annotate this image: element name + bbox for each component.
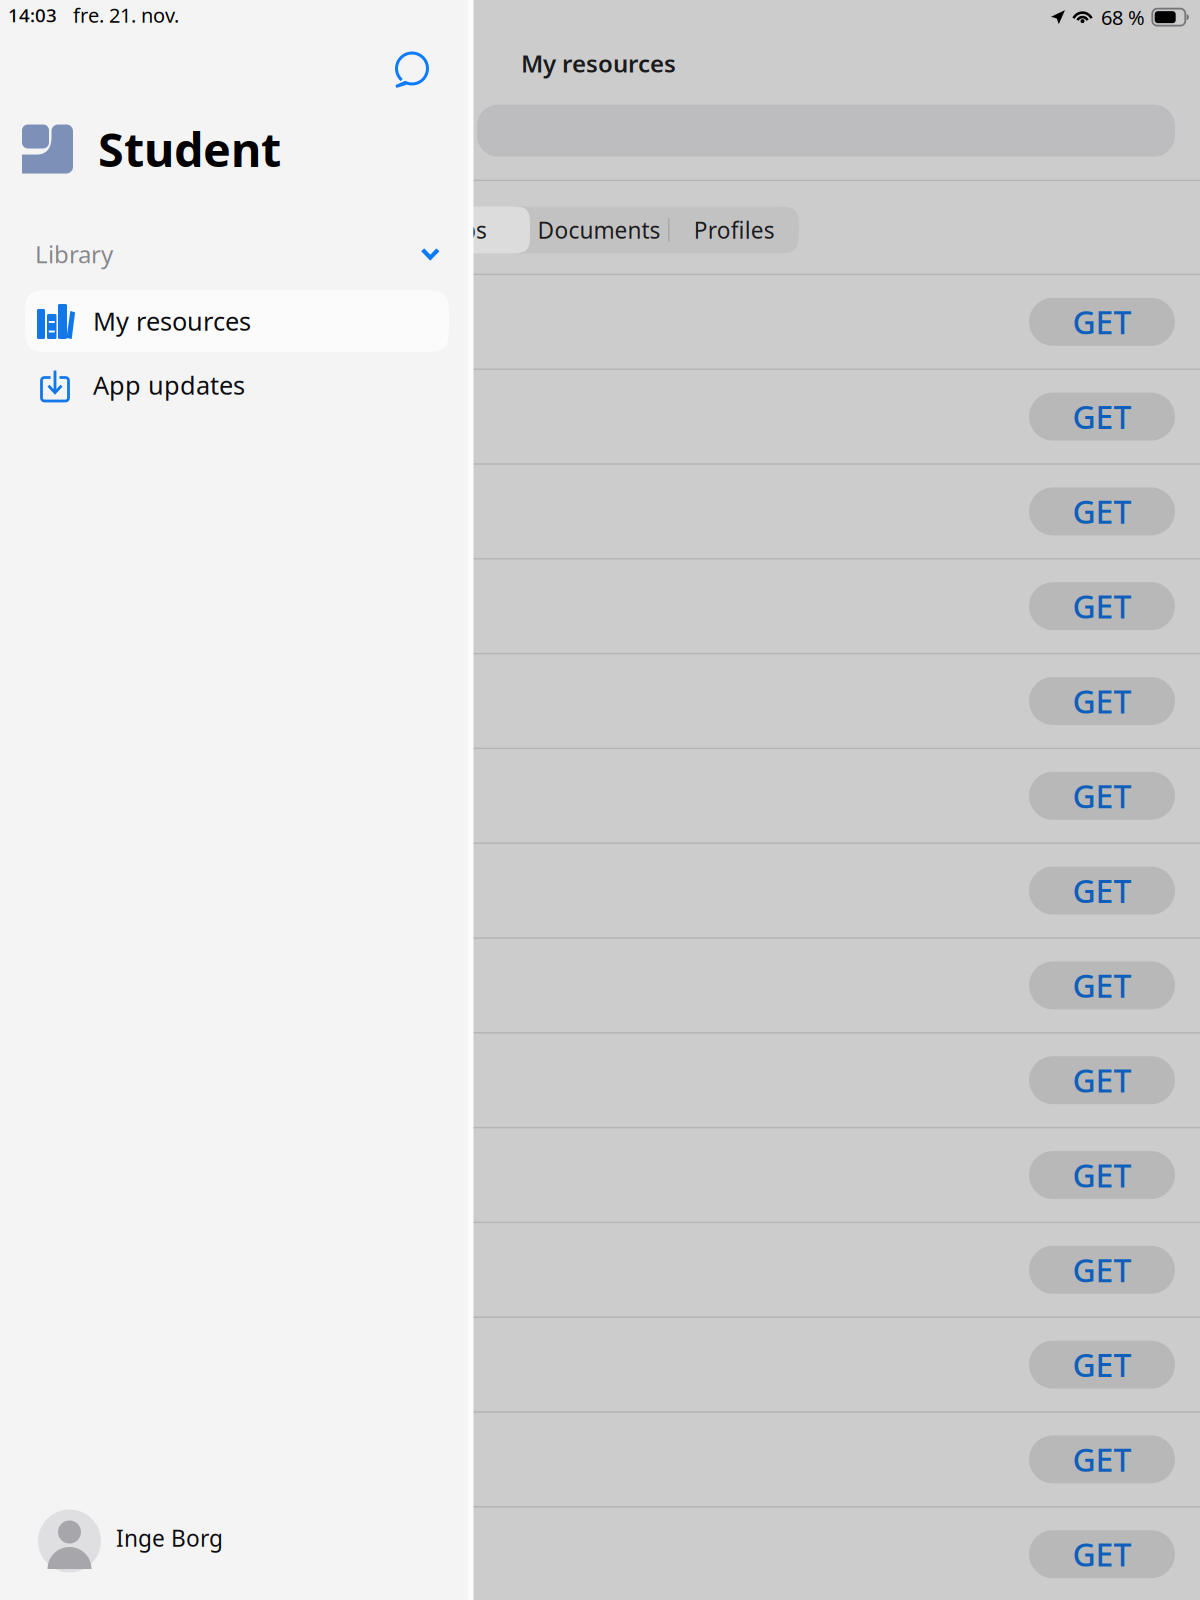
button[interactable]: GET <box>0 1507 1200 1600</box>
button[interactable]: Apps <box>391 206 530 253</box>
staticText: My resources <box>521 47 676 79</box>
staticText: GET <box>1072 869 1131 912</box>
button[interactable]: Profiles <box>669 206 799 253</box>
staticText: GET <box>1072 775 1131 817</box>
staticText: fre. 21. nov. <box>73 2 179 28</box>
button[interactable]: Inge Borg <box>0 1482 473 1600</box>
button[interactable]: GET <box>0 1318 1200 1411</box>
staticText: Inge Borg <box>116 1523 223 1553</box>
button[interactable]: GET <box>0 844 1200 937</box>
button[interactable]: GET <box>0 749 1200 842</box>
staticText: GET <box>1072 1438 1131 1481</box>
button[interactable]: My resources <box>25 290 449 352</box>
button[interactable]: GET <box>0 370 1200 463</box>
button[interactable]: Library <box>0 230 473 278</box>
button[interactable]: GET <box>0 1128 1200 1222</box>
button[interactable]: GET <box>0 939 1200 1032</box>
button[interactable]: GET <box>0 560 1200 653</box>
staticText: GET <box>1072 1343 1131 1386</box>
staticText: GET <box>1072 680 1131 722</box>
button[interactable]: GET <box>0 1034 1200 1127</box>
staticText: GET <box>1072 301 1131 343</box>
staticText: Student <box>98 118 281 180</box>
staticText: Profiles <box>694 215 775 245</box>
staticText: Apps <box>434 215 487 245</box>
staticText: Library <box>35 238 113 270</box>
staticText: GET <box>1072 1059 1131 1101</box>
staticText: GET <box>1072 964 1131 1007</box>
staticText: GET <box>1072 585 1131 627</box>
button[interactable]: GET <box>0 275 1200 368</box>
button[interactable]: GET <box>0 654 1200 748</box>
button[interactable]: Messages <box>380 39 442 101</box>
button[interactable]: App updates <box>25 354 449 416</box>
staticText: App updates <box>93 368 245 402</box>
staticText: GET <box>1072 395 1131 438</box>
staticText: 14:03 <box>8 3 57 27</box>
button[interactable]: GET <box>0 1223 1200 1316</box>
button[interactable]: Documents <box>530 206 668 253</box>
button[interactable]: GET <box>0 1413 1200 1506</box>
staticText: GET <box>1072 1154 1131 1196</box>
staticText: GET <box>1072 1249 1131 1291</box>
button[interactable]: GET <box>0 465 1200 558</box>
staticText: GET <box>1072 490 1131 533</box>
staticText: My resources <box>93 304 251 338</box>
staticText: GET <box>1072 1533 1131 1575</box>
staticText: 68 % <box>1101 4 1145 30</box>
staticText: Documents <box>537 215 660 245</box>
